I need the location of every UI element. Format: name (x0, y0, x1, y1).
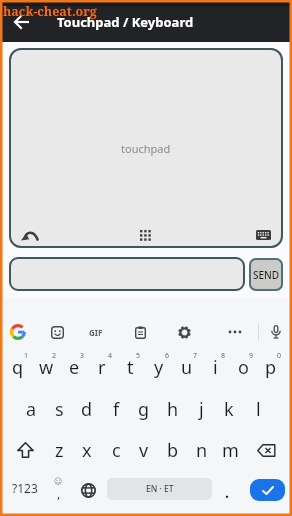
staticText: g (138, 397, 150, 422)
button[interactable]: m (210, 437, 250, 463)
button[interactable] (222, 319, 248, 345)
button[interactable] (9, 257, 245, 291)
staticText: 5 (136, 351, 141, 361)
staticText: d (81, 397, 93, 422)
button[interactable]: r (82, 354, 122, 380)
button[interactable]: . (217, 480, 237, 504)
staticText: ?123 (12, 480, 38, 496)
button[interactable]: u (167, 354, 207, 380)
staticText: e (69, 355, 80, 380)
staticText: touchpad (121, 141, 171, 156)
staticText: , (57, 484, 61, 502)
staticText: a (26, 397, 37, 422)
staticText: 6 (165, 351, 170, 361)
button[interactable]: EN · ET (107, 478, 212, 500)
staticText: 4 (108, 351, 113, 361)
button[interactable]: j (181, 396, 221, 422)
staticText: s (55, 397, 64, 422)
staticText: o (238, 355, 249, 380)
staticText: x (82, 438, 92, 463)
button[interactable]: d (67, 396, 107, 422)
staticText: i (213, 355, 218, 380)
button[interactable]: a (11, 396, 51, 422)
button[interactable] (249, 224, 277, 246)
staticText: z (55, 438, 64, 463)
staticText: SEND (253, 268, 280, 282)
button[interactable] (263, 319, 289, 345)
staticText: Touchpad / Keyboard (57, 13, 194, 31)
staticText: q (12, 355, 24, 380)
button[interactable]: z (39, 437, 79, 463)
staticText: u (181, 355, 193, 380)
button[interactable]: p (251, 354, 291, 380)
staticText: r (98, 355, 106, 380)
button[interactable]: h (153, 396, 193, 422)
staticText: 2 (52, 351, 57, 361)
button[interactable] (44, 319, 70, 345)
button[interactable] (250, 479, 285, 501)
button[interactable]: e (54, 354, 94, 380)
button[interactable] (131, 224, 159, 246)
button[interactable] (16, 224, 44, 246)
button[interactable] (4, 318, 32, 346)
staticText: 1 (24, 351, 29, 361)
staticText: 0 (277, 351, 282, 361)
staticText: f (113, 397, 120, 422)
staticText: c (112, 438, 121, 463)
staticText: 9 (249, 351, 254, 361)
staticText: b (167, 438, 179, 463)
button[interactable] (8, 8, 36, 36)
staticText: m (222, 438, 239, 463)
staticText: k (224, 397, 234, 422)
button[interactable] (10, 436, 40, 464)
staticText: ☺ (54, 477, 63, 486)
staticText: 8 (221, 351, 226, 361)
button[interactable] (75, 477, 101, 503)
button[interactable]: f (96, 396, 136, 422)
button[interactable]: y (139, 354, 179, 380)
button[interactable]: GIF (82, 322, 110, 342)
button[interactable]: ?123 (4, 475, 46, 501)
staticText: l (256, 397, 261, 422)
button[interactable] (127, 319, 153, 345)
button[interactable]: o (223, 354, 263, 380)
staticText: p (265, 355, 277, 380)
button[interactable] (251, 436, 281, 464)
button[interactable]: touchpad (9, 48, 283, 248)
button[interactable]: v (124, 437, 164, 463)
staticText: t (127, 355, 134, 380)
button[interactable]: t (110, 354, 150, 380)
staticText: hack-cheat.org (4, 4, 98, 21)
staticText: n (196, 438, 208, 463)
button[interactable]: b (153, 437, 193, 463)
staticText: EN · ET (146, 483, 174, 495)
button[interactable]: w (26, 354, 66, 380)
button[interactable]: n (182, 437, 222, 463)
staticText: 3 (80, 351, 85, 361)
staticText: GIF (89, 327, 103, 338)
button[interactable]: i (195, 354, 235, 380)
staticText: y (154, 355, 164, 380)
staticText: h (167, 397, 179, 422)
staticText: j (199, 397, 204, 422)
button[interactable]: SEND (249, 258, 283, 291)
staticText: . (225, 483, 229, 502)
staticText: w (39, 355, 54, 380)
button[interactable] (171, 319, 197, 345)
button[interactable]: c (96, 437, 136, 463)
button[interactable]: g (124, 396, 164, 422)
button[interactable]: l (238, 396, 278, 422)
staticText: hack-cheat.org (3, 3, 97, 20)
button[interactable]: s (39, 396, 79, 422)
button[interactable]: ☺ (45, 474, 73, 508)
button[interactable]: x (67, 437, 107, 463)
staticText: 7 (193, 351, 198, 361)
button[interactable]: q (0, 354, 38, 380)
staticText: v (139, 438, 149, 463)
button[interactable]: k (209, 396, 249, 422)
